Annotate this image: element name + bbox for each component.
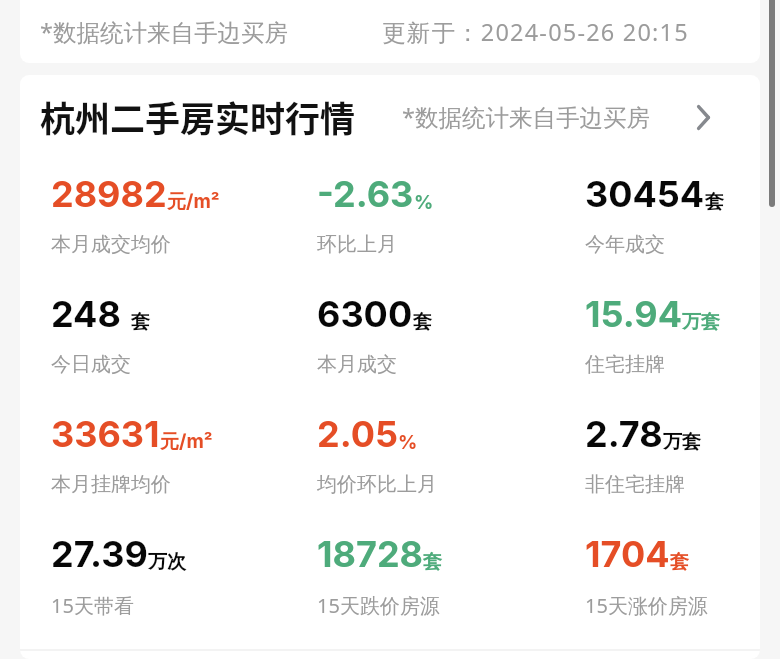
staticText: 248 [51,292,121,336]
staticText: 今日成交 [51,352,131,377]
staticText: 本月成交均价 [51,232,171,257]
staticText: 18728 [317,532,423,576]
staticText: % [398,431,418,454]
staticText: 套 [413,310,432,334]
staticText: 套 [705,190,724,214]
staticText: 套 [131,310,150,334]
staticText: 1704 [585,532,670,576]
staticText: 本月挂牌均价 [51,472,171,497]
staticText: 2.78 [585,412,663,456]
staticText: 环比上月 [317,232,397,257]
staticText: % [414,191,434,214]
staticText: 15天涨价房源 [585,592,708,619]
staticText: *数据统计来自手边买房 [40,16,288,48]
staticText: 套 [670,550,689,574]
staticText: 30454 [585,172,705,216]
staticText: 万套 [663,430,701,454]
staticText: 15天带看 [51,592,134,619]
staticText: 元/m² [160,430,213,454]
staticText: 2.05 [317,412,398,456]
other: 查看详情 [693,102,713,132]
staticText: 6300 [317,292,413,336]
staticText: 套 [423,550,442,574]
staticText: 28982 [51,172,167,216]
button[interactable]: 杭州二手房实时行情 [20,75,760,172]
staticText: 更新于：2024-05-26 20:15 [382,16,689,48]
staticText: 本月成交 [317,352,397,377]
staticText: 均价环比上月 [317,472,437,497]
staticText: 元/m² [167,190,220,214]
staticText: 万次 [148,550,186,574]
staticText: 27.39 [51,532,148,576]
staticText: 33631 [51,412,160,456]
staticText: 15天跌价房源 [317,592,440,619]
staticText: 15.94 [585,292,682,336]
staticText: -2.63 [317,172,414,216]
staticText: *数据统计来自手边买房 [402,101,650,133]
staticText: 住宅挂牌 [585,352,665,377]
staticText: 非住宅挂牌 [585,472,685,497]
staticText: 杭州二手房实时行情 [40,91,356,142]
staticText: 万套 [682,310,720,334]
staticText: 今年成交 [585,232,665,257]
